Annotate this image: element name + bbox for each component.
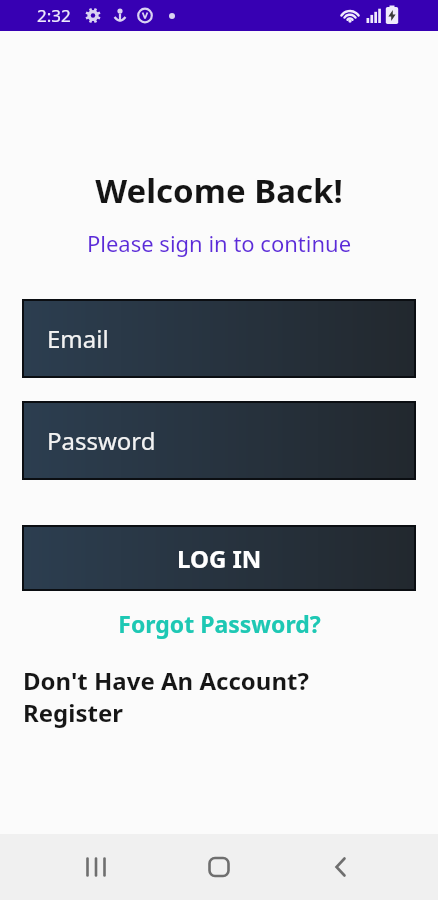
button[interactable] [317,843,365,891]
staticText: 2:32 [37,4,71,27]
staticText: Forgot Password? [118,608,321,639]
staticText: Please sign in to continue [0,228,438,258]
staticText: Don't Have An Account? Register [23,664,309,729]
staticText: Password [47,424,156,457]
button[interactable] [195,843,243,891]
button[interactable] [72,843,120,891]
button[interactable]: Don't Have An Account? Register [23,664,309,729]
button[interactable]: Email [22,299,416,378]
staticText: Welcome Back! [0,168,438,213]
button[interactable]: Password [22,401,416,480]
staticText: Email [47,322,109,355]
button[interactable]: LOG IN [22,525,416,591]
staticText: LOG IN [177,542,262,575]
button[interactable]: Forgot Password? [118,608,321,639]
